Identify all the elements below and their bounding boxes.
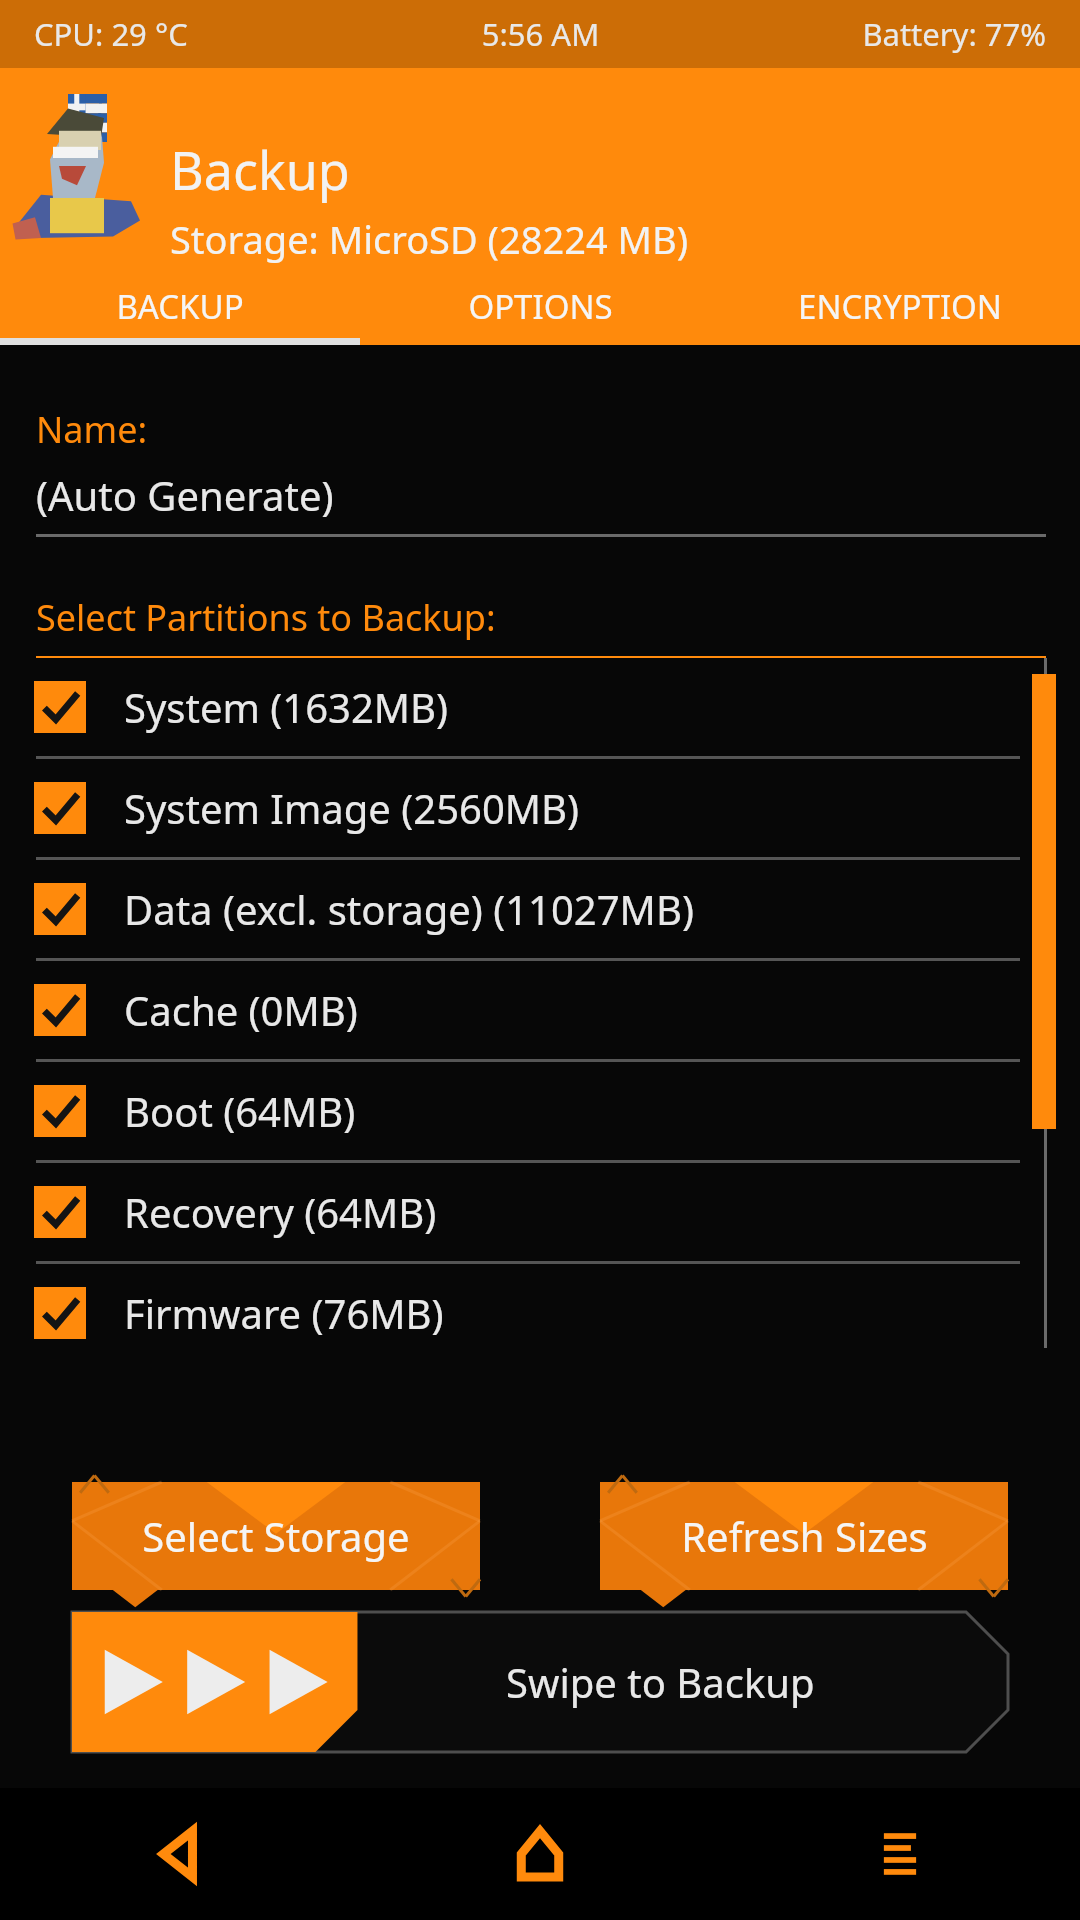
button[interactable]: Cache (0MB) — [0, 961, 1080, 1059]
button[interactable]: (Auto Generate) — [36, 468, 1046, 537]
button[interactable]: OPTIONS — [360, 267, 720, 345]
staticText: (Auto Generate) — [36, 468, 334, 522]
staticText: CPU: 29 °C — [34, 13, 372, 55]
staticText: Select Storage — [142, 1509, 410, 1563]
button[interactable]: Data (excl. storage) (11027MB) — [0, 860, 1080, 958]
staticText: Name: — [36, 405, 148, 454]
staticText: Battery: 77% — [709, 13, 1046, 55]
button[interactable]: Menu — [720, 1788, 1080, 1920]
button[interactable]: Home — [360, 1788, 720, 1920]
button[interactable]: Firmware (76MB) — [0, 1264, 1080, 1362]
button[interactable]: Select Storage — [72, 1482, 480, 1590]
staticText: Backup — [170, 134, 350, 205]
staticText: Select Partitions to Backup: — [36, 593, 496, 642]
button[interactable]: BACKUP — [0, 267, 360, 345]
staticText: Cache (0MB) — [124, 983, 358, 1037]
button[interactable]: Back — [0, 1788, 360, 1920]
button[interactable]: Recovery (64MB) — [0, 1163, 1080, 1261]
staticText: 5:56 AM — [372, 13, 709, 55]
staticText: Data (excl. storage) (11027MB) — [124, 882, 694, 936]
staticText: Recovery (64MB) — [124, 1185, 437, 1239]
button[interactable]: ENCRYPTION — [720, 267, 1080, 345]
staticText: Storage: MicroSD (28224 MB) — [170, 213, 689, 265]
staticText: Swipe to Backup — [506, 1655, 815, 1709]
button[interactable]: Boot (64MB) — [0, 1062, 1080, 1160]
button[interactable]: Refresh Sizes — [600, 1482, 1008, 1590]
staticText: Refresh Sizes — [681, 1509, 928, 1563]
staticText: BACKUP — [116, 284, 244, 329]
staticText: Boot (64MB) — [124, 1084, 356, 1138]
staticText: System (1632MB) — [124, 680, 449, 734]
staticText: ENCRYPTION — [798, 284, 1002, 329]
button[interactable]: System (1632MB) — [0, 658, 1080, 756]
staticText: System Image (2560MB) — [124, 781, 580, 835]
button[interactable]: System Image (2560MB) — [0, 759, 1080, 857]
staticText: OPTIONS — [468, 284, 613, 329]
staticText: Firmware (76MB) — [124, 1286, 444, 1340]
button[interactable]: Swipe to Backup — [72, 1612, 1008, 1752]
